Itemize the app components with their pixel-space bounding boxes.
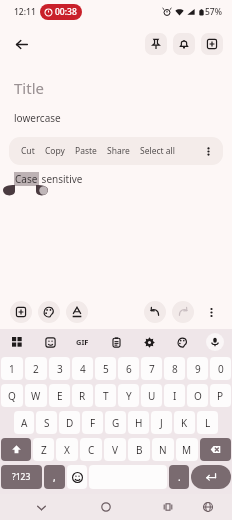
staticText: . (178, 470, 181, 484)
button[interactable]: Q (1, 384, 23, 407)
button[interactable]: Emoji (67, 465, 87, 489)
button[interactable]: More options (201, 144, 215, 158)
button[interactable]: Comma (44, 465, 65, 489)
staticText: ?123 (12, 471, 31, 483)
button[interactable]: I (164, 384, 185, 407)
button[interactable]: C (80, 438, 102, 461)
button[interactable]: Toolbar (8, 333, 26, 351)
button[interactable]: E (49, 384, 70, 407)
staticText: W (31, 389, 41, 403)
button[interactable]: Undo (144, 301, 166, 323)
staticText: , (53, 470, 56, 484)
button[interactable]: S (36, 411, 57, 434)
staticText: 5 (103, 362, 109, 376)
button[interactable]: A (14, 411, 34, 434)
button[interactable]: Themes (173, 333, 191, 351)
button[interactable]: Cut (17, 144, 39, 158)
button[interactable]: G (105, 411, 126, 434)
staticText: N (159, 443, 167, 457)
staticText: K (181, 416, 188, 430)
button[interactable]: 9 (187, 357, 208, 380)
button[interactable]: L (197, 411, 218, 434)
staticText: Case (15, 172, 38, 186)
staticText: X (64, 443, 70, 457)
button[interactable]: 5 (95, 357, 116, 380)
button[interactable]: H (128, 411, 149, 434)
staticText: G (112, 416, 120, 430)
button[interactable]: Paste (71, 144, 101, 158)
button[interactable]: Pin (145, 33, 167, 55)
button[interactable]: Stickers (41, 333, 59, 351)
button[interactable]: Text format (66, 301, 88, 323)
button[interactable]: Period (169, 465, 189, 489)
button[interactable]: V (104, 438, 126, 461)
staticText: 12:11 (14, 6, 36, 18)
staticText: 4 (80, 362, 86, 376)
button[interactable]: Voice input (206, 333, 224, 351)
button[interactable]: F (82, 411, 103, 434)
button[interactable]: 7 (141, 357, 162, 380)
staticText: Select all (140, 145, 175, 157)
button[interactable]: Select all (136, 144, 179, 158)
staticText: 3 (57, 362, 63, 376)
button[interactable]: Background color (38, 301, 60, 323)
button[interactable]: Enter (191, 465, 231, 489)
button[interactable]: Reminder (173, 33, 195, 55)
button[interactable]: 4 (72, 357, 93, 380)
button[interactable]: P (210, 384, 231, 407)
button[interactable]: U (141, 384, 162, 407)
button[interactable]: 2 (25, 357, 47, 380)
staticText: 57% (205, 6, 222, 18)
button[interactable]: Settings (140, 333, 158, 351)
staticText: Z (41, 443, 47, 457)
staticText: Q (8, 389, 16, 403)
staticText: Y (126, 389, 132, 403)
button[interactable]: Back (31, 497, 51, 517)
button[interactable]: Redo (172, 301, 194, 323)
button[interactable]: GIF (74, 335, 91, 349)
button[interactable]: N (152, 438, 174, 461)
button[interactable]: T (95, 384, 116, 407)
staticText: M (182, 443, 192, 457)
button[interactable]: Add content (10, 301, 32, 323)
staticText: O (194, 389, 202, 403)
staticText: lowercase (14, 111, 61, 125)
button[interactable]: Change keyboard language (198, 497, 218, 517)
button[interactable]: Z (33, 438, 54, 461)
button[interactable]: Home (96, 497, 116, 517)
button[interactable]: Clipboard (107, 333, 125, 351)
button[interactable]: K (174, 411, 195, 434)
button[interactable]: 0 (210, 357, 231, 380)
button[interactable]: X (56, 438, 78, 461)
button[interactable]: O (187, 384, 208, 407)
staticText: sensitive (39, 172, 83, 186)
staticText: Share (107, 145, 130, 157)
button[interactable]: ?123 (1, 465, 42, 489)
button[interactable]: B (128, 438, 150, 461)
button[interactable]: W (25, 384, 47, 407)
staticText: 8 (172, 362, 178, 376)
button[interactable]: D (59, 411, 80, 434)
button[interactable]: Copy (41, 144, 69, 158)
button[interactable]: Shift (1, 438, 31, 461)
button[interactable]: M (176, 438, 198, 461)
staticText: V (112, 443, 118, 457)
button[interactable]: More (200, 301, 222, 323)
button[interactable]: 6 (118, 357, 139, 380)
staticText: 6 (126, 362, 132, 376)
button[interactable]: 1 (1, 357, 23, 380)
button[interactable]: R (72, 384, 93, 407)
button[interactable]: Back (8, 31, 34, 57)
button[interactable]: Y (118, 384, 139, 407)
button[interactable]: 8 (164, 357, 185, 380)
staticText: T (103, 389, 109, 403)
button[interactable]: Share (103, 144, 134, 158)
button[interactable]: Recents (158, 497, 178, 517)
button[interactable]: Backspace (200, 438, 231, 461)
button[interactable]: J (151, 411, 172, 434)
staticText: B (136, 443, 143, 457)
button[interactable]: Add to album (201, 33, 223, 55)
staticText: U (148, 389, 156, 403)
button[interactable]: 3 (49, 357, 70, 380)
